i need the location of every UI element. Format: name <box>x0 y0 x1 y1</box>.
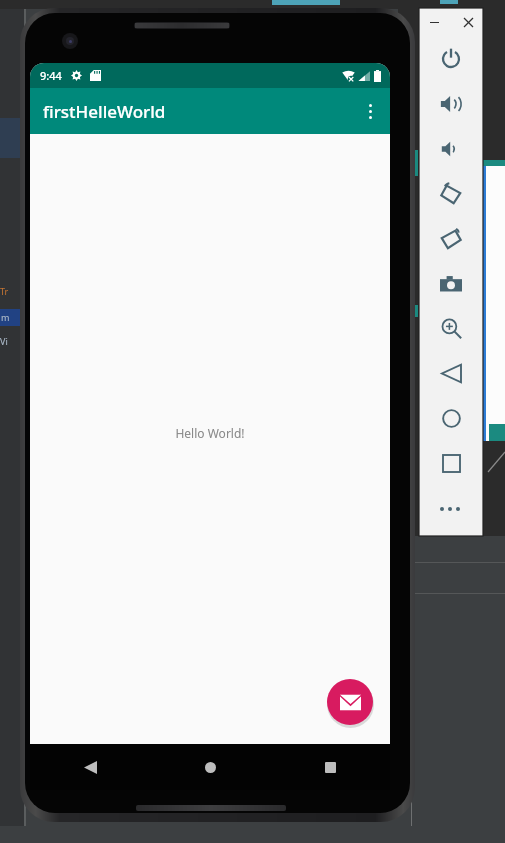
button[interactable]: More <box>419 486 483 531</box>
button[interactable]: Zoom <box>419 306 483 351</box>
button[interactable]: Rotate left <box>419 171 483 216</box>
button[interactable]: Close <box>457 11 479 33</box>
button[interactable]: Rotate right <box>419 216 483 261</box>
staticText: Tr <box>0 285 9 297</box>
button[interactable]: Minimize <box>423 11 445 33</box>
button[interactable]: Back <box>68 745 112 789</box>
button[interactable]: Power <box>419 36 483 81</box>
staticText: firstHelleWorld <box>43 100 166 123</box>
staticText: 9:44 <box>40 68 62 83</box>
button[interactable]: Home <box>188 745 232 789</box>
button[interactable]: Take screenshot <box>419 261 483 306</box>
staticText: Vi <box>0 335 8 347</box>
button[interactable]: Volume down <box>419 126 483 171</box>
button[interactable]: Send email <box>327 679 373 725</box>
button[interactable]: Recent apps <box>308 745 352 789</box>
button[interactable]: More options <box>350 91 390 131</box>
button[interactable]: Home <box>419 396 483 441</box>
button[interactable]: Volume up <box>419 81 483 126</box>
button[interactable]: Hello World! <box>175 425 245 441</box>
button[interactable]: Overview <box>419 441 483 486</box>
button[interactable]: Back <box>419 351 483 396</box>
staticText: m <box>1 311 10 323</box>
